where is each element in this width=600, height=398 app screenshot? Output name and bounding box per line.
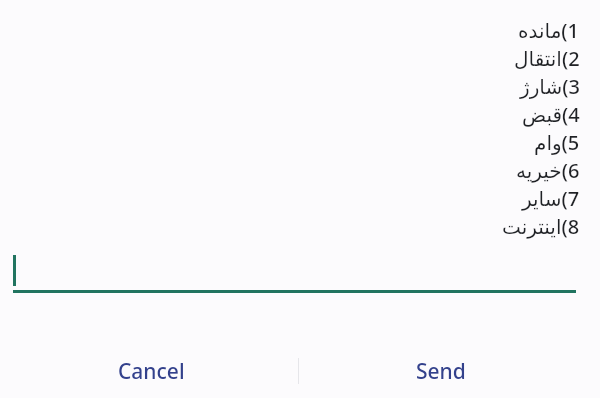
staticText: ‏3)شارژ	[520, 73, 580, 100]
staticText: Cancel	[118, 357, 185, 386]
button[interactable]: USSD reply input field	[0, 248, 600, 296]
staticText: ‏5)وام	[534, 129, 580, 156]
staticText: ‏2)انتقال	[514, 45, 580, 72]
staticText: ‏6)خیریه	[516, 157, 580, 184]
staticText: ‏4)قبض	[522, 101, 580, 128]
staticText: ‏1)مانده	[518, 17, 580, 44]
staticText: ‏7)سایر	[522, 185, 580, 212]
staticText: ‏8)اینترنت	[502, 213, 580, 240]
button[interactable]: Cancel	[0, 340, 300, 398]
button[interactable]: Send	[300, 340, 600, 398]
staticText: Send	[416, 357, 466, 386]
